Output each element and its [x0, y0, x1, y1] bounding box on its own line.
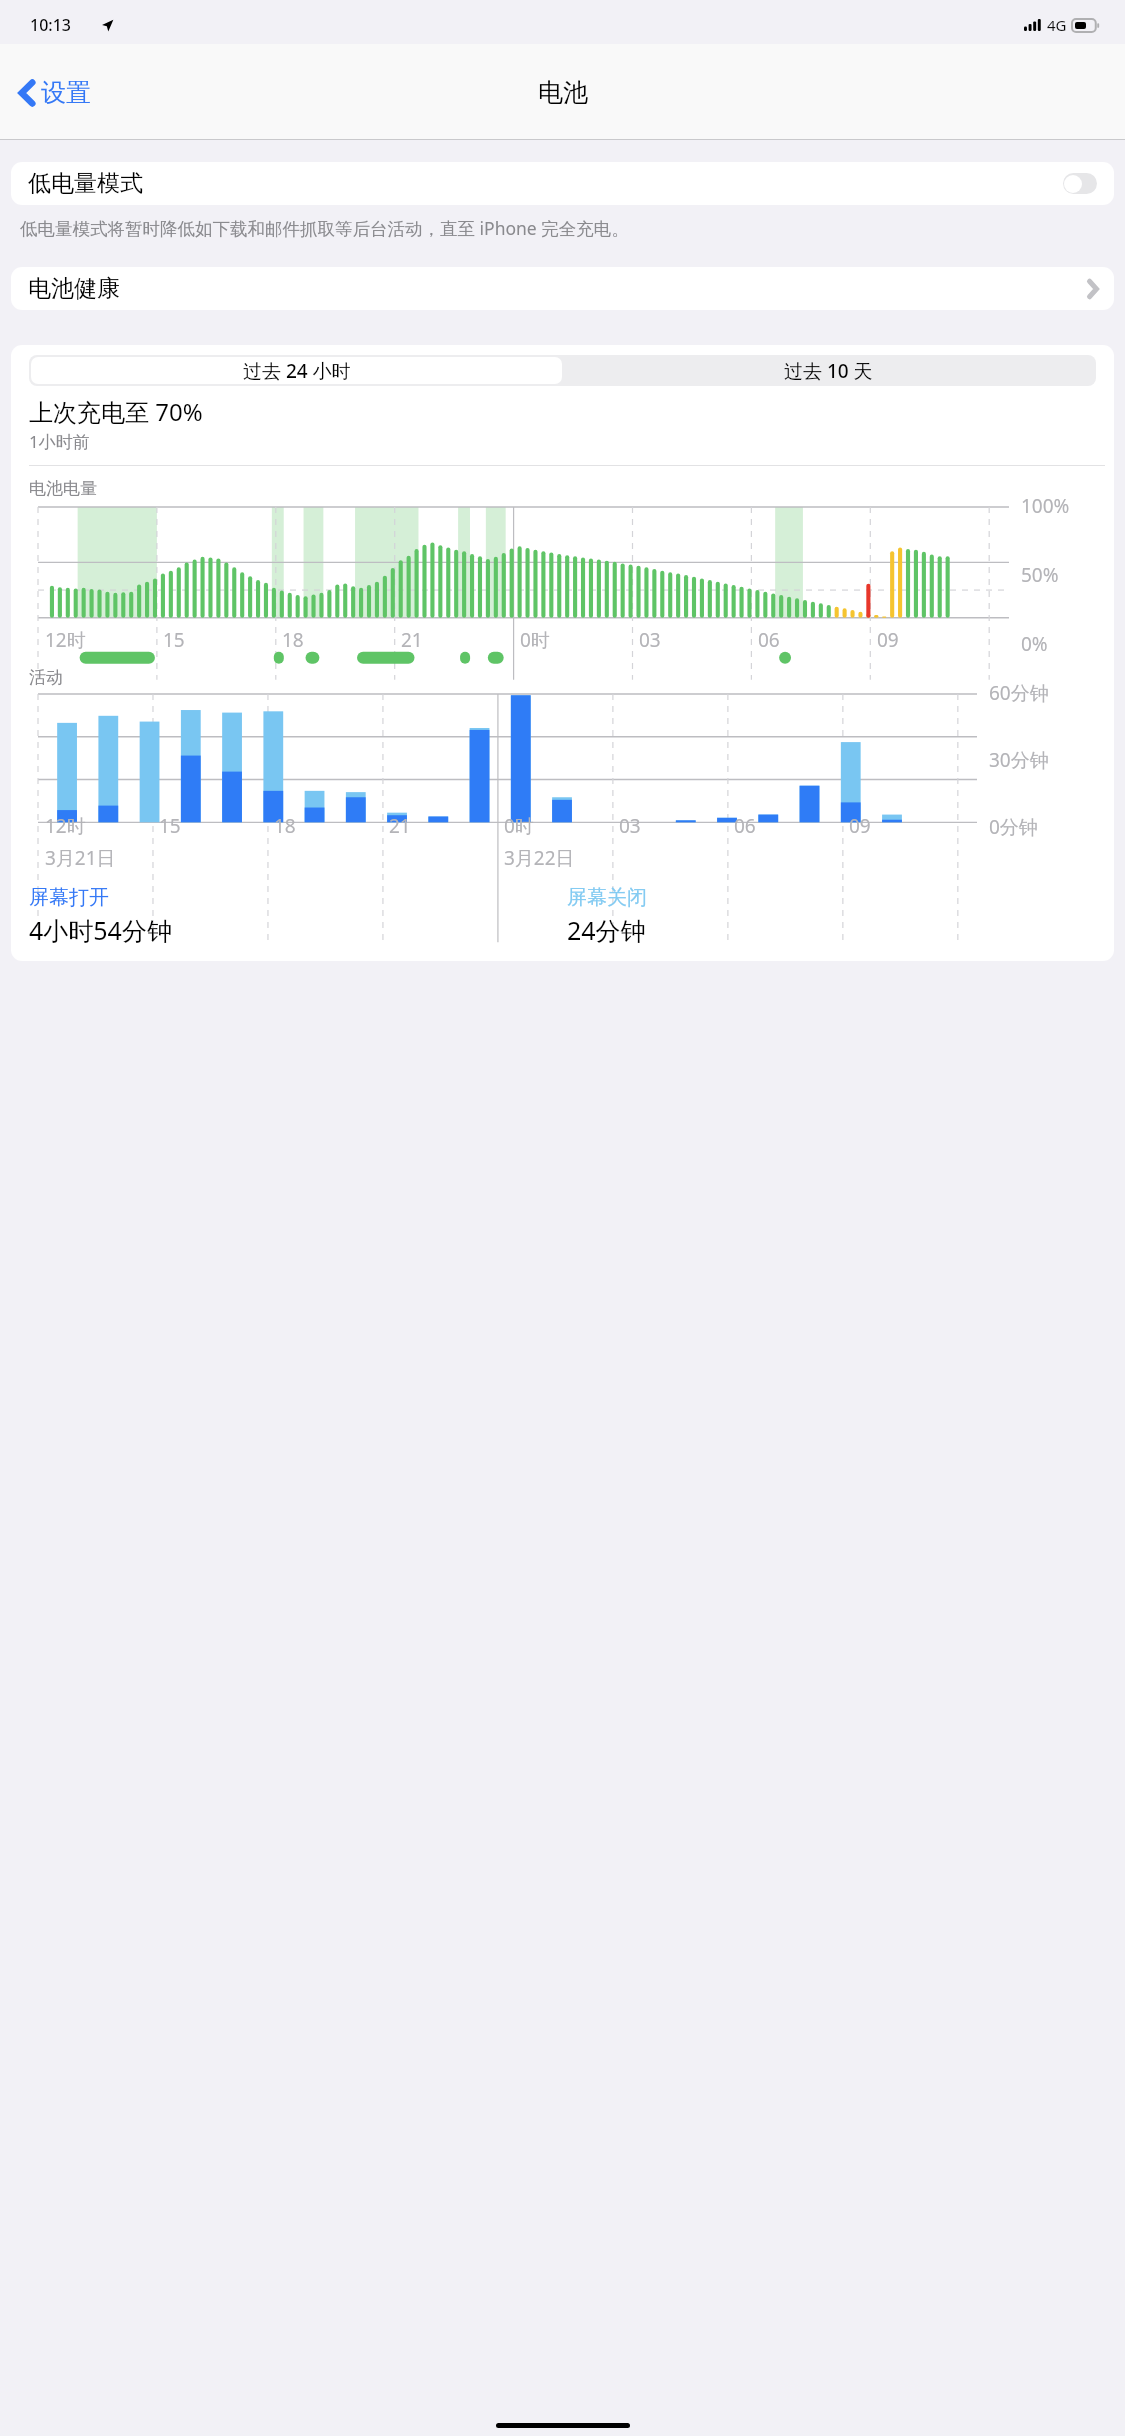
staticText: 设置 — [41, 77, 91, 108]
staticText: 0时 — [504, 813, 534, 839]
staticText: 21 — [401, 627, 423, 653]
staticText: 06 — [734, 813, 756, 839]
button[interactable]: 过去 10 天 — [562, 357, 1094, 384]
staticText: 03 — [639, 627, 661, 653]
staticText: 0时 — [520, 627, 550, 653]
staticText: 09 — [849, 813, 871, 839]
staticText: 18 — [282, 627, 304, 653]
staticText: 15 — [159, 813, 181, 839]
staticText: 15 — [163, 627, 185, 653]
staticText: 电池 — [538, 77, 588, 108]
staticText: 电池电量 — [29, 478, 97, 499]
staticText: 18 — [274, 813, 296, 839]
staticText: 12时 — [45, 813, 86, 839]
staticText: 低电量模式将暂时降低如下载和邮件抓取等后台活动，直至 iPhone 完全充电。 — [20, 216, 1105, 240]
staticText: 电池健康 — [28, 274, 120, 303]
staticText: 0分钟 — [989, 814, 1038, 840]
staticText: 过去 24 小时 — [243, 358, 351, 384]
staticText: 60分钟 — [989, 680, 1049, 706]
staticText: 4G — [1047, 15, 1067, 35]
button[interactable]: Low Power Mode toggle — [1063, 173, 1097, 194]
staticText: 21 — [389, 813, 411, 839]
staticText: 50% — [1021, 562, 1059, 588]
staticText: 低电量模式 — [28, 169, 143, 198]
staticText: 3月21日 — [45, 845, 116, 871]
staticText: 3月22日 — [504, 845, 575, 871]
staticText: 12时 — [45, 627, 86, 653]
staticText: 100% — [1021, 493, 1070, 519]
button[interactable]: 屏幕打开 — [29, 885, 109, 910]
staticText: 过去 10 天 — [784, 358, 873, 384]
staticText: 活动 — [29, 667, 63, 688]
button[interactable]: 电池健康 — [11, 267, 1114, 310]
staticText: 03 — [619, 813, 641, 839]
staticText: 4小时54分钟 — [29, 913, 172, 947]
staticText: 10:13 — [30, 14, 71, 36]
button[interactable]: 低电量模式 — [11, 162, 1114, 205]
staticText: 06 — [758, 627, 780, 653]
staticText: 09 — [877, 627, 899, 653]
staticText: 24分钟 — [567, 913, 646, 947]
button[interactable]: 过去 24 小时 — [31, 357, 562, 384]
staticText: 上次充电至 70% — [29, 395, 203, 428]
staticText: 0% — [1021, 631, 1048, 657]
button[interactable]: 屏幕关闭 — [567, 885, 647, 910]
staticText: 30分钟 — [989, 747, 1049, 773]
staticText: 1小时前 — [29, 430, 90, 453]
button[interactable]: 设置 — [14, 69, 97, 116]
